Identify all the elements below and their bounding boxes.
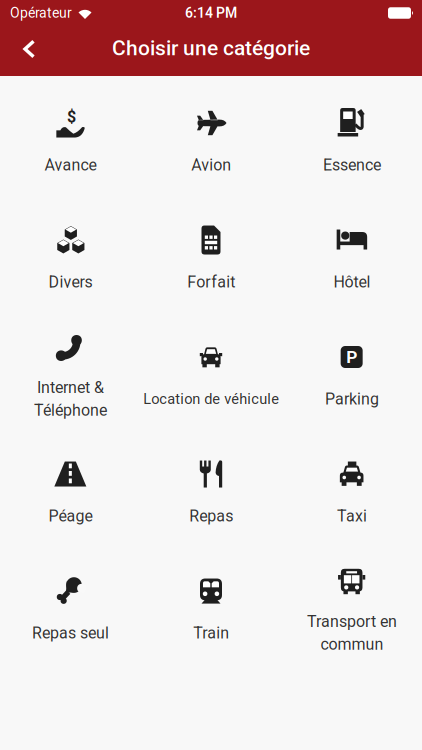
button[interactable]: Essence bbox=[281, 80, 422, 197]
staticText: Repas bbox=[189, 507, 233, 525]
button[interactable]: Hôtel bbox=[281, 197, 422, 314]
staticText: Avance bbox=[44, 156, 96, 174]
button[interactable]: Location de véhicule bbox=[141, 314, 281, 431]
staticText: Train bbox=[193, 624, 229, 642]
staticText: Choisir une catégorie bbox=[112, 36, 310, 60]
staticText: Location de véhicule bbox=[143, 390, 279, 407]
staticText: Repas seul bbox=[32, 624, 109, 642]
button[interactable]: Repas seul bbox=[0, 548, 141, 665]
button[interactable]: $ bbox=[0, 80, 141, 197]
staticText: Essence bbox=[323, 156, 381, 174]
staticText: Divers bbox=[48, 273, 92, 291]
staticText: 6:14 PM bbox=[185, 5, 237, 21]
staticText: Forfait bbox=[187, 273, 235, 291]
staticText: Parking bbox=[325, 390, 379, 408]
staticText: Internet & Téléphone bbox=[34, 378, 107, 420]
staticText: P bbox=[346, 347, 357, 367]
staticText: Opérateur bbox=[10, 5, 72, 21]
button[interactable]: Forfait bbox=[141, 197, 281, 314]
button[interactable]: Péage bbox=[0, 431, 141, 548]
button[interactable]: Divers bbox=[0, 197, 141, 314]
button[interactable]: Internet & Téléphone bbox=[0, 314, 141, 431]
staticText: $ bbox=[67, 108, 76, 126]
staticText: Avion bbox=[191, 156, 231, 174]
button[interactable]: Taxi bbox=[281, 431, 422, 548]
button[interactable]: P bbox=[281, 314, 422, 431]
button[interactable]: Repas bbox=[141, 431, 281, 548]
staticText: Hôtel bbox=[333, 273, 370, 291]
button[interactable]: Back bbox=[0, 32, 36, 71]
staticText: Taxi bbox=[337, 507, 367, 525]
staticText: Péage bbox=[48, 507, 92, 525]
button[interactable]: Avion bbox=[141, 80, 281, 197]
button[interactable]: Transport en commun bbox=[281, 548, 422, 665]
button[interactable]: Train bbox=[141, 548, 281, 665]
staticText: Transport en commun bbox=[307, 612, 397, 654]
